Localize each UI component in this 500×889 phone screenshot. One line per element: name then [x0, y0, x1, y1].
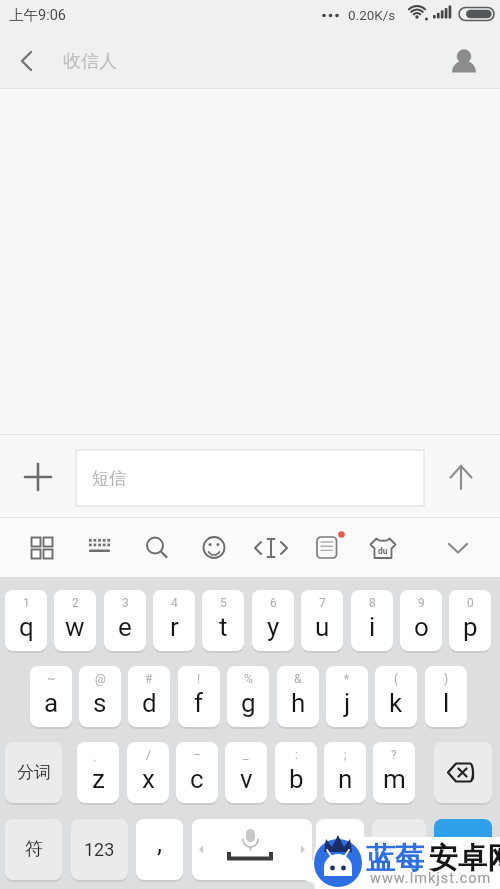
button[interactable] [434, 819, 492, 880]
staticText: r [170, 612, 179, 642]
staticText: o [414, 612, 429, 642]
button[interactable]: 。 [316, 819, 364, 880]
staticText: a [44, 688, 59, 718]
staticText: 蓝莓 [366, 840, 424, 872]
button[interactable]: 、 [77, 742, 119, 803]
staticText: ! [197, 672, 201, 686]
button[interactable]: , [136, 819, 183, 880]
staticText: p [463, 612, 478, 642]
button[interactable]: @ [79, 666, 121, 727]
staticText: 9 [418, 596, 425, 610]
staticText: : [295, 748, 298, 762]
staticText: q [19, 612, 34, 642]
staticText: ? [391, 748, 397, 762]
staticText: ) [444, 672, 449, 686]
staticText: e [118, 612, 132, 642]
button[interactable] [16, 455, 60, 499]
button[interactable]: * [326, 666, 368, 727]
button[interactable]: 短信 [76, 450, 424, 506]
button[interactable]: : [275, 742, 317, 803]
staticText: n [338, 764, 353, 794]
staticText: 短信 [92, 468, 126, 489]
staticText: _ [243, 748, 249, 762]
button[interactable] [438, 455, 482, 499]
staticText: 、 [92, 748, 104, 763]
button[interactable] [372, 819, 426, 880]
staticText: 。 [329, 832, 351, 860]
button[interactable] [305, 526, 349, 570]
staticText: 分词 [17, 762, 51, 783]
staticText: l [443, 688, 450, 718]
staticText: – [193, 748, 201, 762]
button[interactable]: ; [324, 742, 366, 803]
staticText: 收信人 [63, 50, 117, 73]
button[interactable]: ! [178, 666, 220, 727]
button[interactable]: 分词 [5, 742, 62, 803]
staticText: i [369, 612, 376, 642]
staticText: x [142, 764, 155, 794]
button[interactable]: ( [375, 666, 417, 727]
button[interactable]: 123 [71, 819, 128, 880]
button[interactable]: 4 [153, 590, 195, 651]
button[interactable]: 符 [5, 819, 62, 880]
button[interactable]: 1 [5, 590, 47, 651]
staticText: % [244, 672, 253, 686]
button[interactable]: 8 [351, 590, 393, 651]
button[interactable]: 9 [400, 590, 442, 651]
staticText: / [146, 748, 151, 762]
button[interactable]: ) [425, 666, 467, 727]
staticText: z [92, 764, 105, 794]
staticText: * [344, 672, 350, 686]
staticText: 4 [171, 596, 178, 610]
staticText: b [289, 764, 304, 794]
button[interactable]: 2 [54, 590, 96, 651]
button[interactable] [444, 42, 484, 82]
staticText: 8 [369, 596, 376, 610]
button[interactable] [192, 819, 312, 880]
staticText: s [93, 688, 107, 718]
button[interactable]: 5 [202, 590, 244, 651]
button[interactable]: 6 [252, 590, 294, 651]
staticText: 1 [23, 596, 30, 610]
button[interactable] [436, 526, 480, 570]
button[interactable] [434, 742, 492, 803]
button[interactable] [20, 526, 64, 570]
staticText: 7 [319, 596, 326, 610]
staticText: c [190, 764, 204, 794]
button[interactable]: 3 [104, 590, 146, 651]
staticText: u [315, 612, 330, 642]
staticText: @ [95, 672, 106, 686]
staticText: h [291, 688, 306, 718]
button[interactable] [192, 526, 236, 570]
button[interactable]: _ [225, 742, 267, 803]
button[interactable]: – [176, 742, 218, 803]
button[interactable]: & [277, 666, 319, 727]
button[interactable]: 0 [449, 590, 491, 651]
button[interactable]: ? [373, 742, 415, 803]
staticText: www.lmkjst.com [370, 870, 492, 887]
staticText: , [157, 828, 163, 858]
button[interactable] [8, 44, 48, 80]
button[interactable] [361, 526, 405, 570]
staticText: j [344, 688, 351, 718]
button[interactable]: / [127, 742, 169, 803]
staticText: ; [344, 748, 347, 762]
button[interactable] [78, 526, 122, 570]
button[interactable] [249, 526, 293, 570]
button[interactable]: 7 [301, 590, 343, 651]
staticText: t [219, 612, 228, 642]
staticText: ~ [47, 672, 56, 686]
button[interactable]: ~ [30, 666, 72, 727]
button[interactable]: % [227, 666, 269, 727]
staticText: 5 [220, 596, 227, 610]
staticText: 3 [122, 596, 129, 610]
button[interactable] [135, 526, 179, 570]
button[interactable]: # [128, 666, 170, 727]
staticText: 符 [25, 838, 43, 861]
staticText: 123 [84, 839, 115, 860]
staticText: ( [394, 672, 399, 686]
staticText: m [383, 764, 406, 794]
staticText: g [241, 688, 256, 718]
staticText: & [294, 672, 302, 686]
staticText: w [65, 612, 85, 642]
